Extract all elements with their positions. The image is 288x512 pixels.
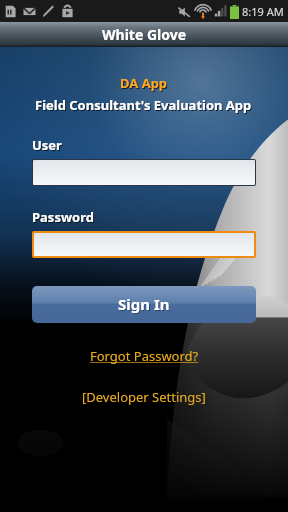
staticText: DA App: [120, 74, 168, 92]
staticText: Sign In: [119, 295, 171, 315]
staticText: [Developer Settings]: [82, 388, 206, 406]
staticText: 8:19 AM: [242, 4, 284, 19]
staticText: Forgot Password?: [90, 347, 199, 365]
button[interactable]: Forgot Password?: [86, 343, 203, 369]
staticText: White Glove: [102, 25, 187, 44]
staticText: DA App: [121, 75, 169, 93]
button[interactable]: [Developer Settings]: [78, 384, 210, 410]
staticText: User: [33, 137, 63, 155]
staticText: Password: [32, 208, 94, 226]
staticText: User: [32, 136, 62, 154]
staticText: Sign In: [118, 294, 170, 314]
button[interactable]: [33, 160, 255, 185]
staticText: Field Consultant's Evaluation App: [35, 96, 252, 114]
button[interactable]: Sign In: [32, 286, 256, 323]
staticText: Password: [33, 209, 95, 227]
button[interactable]: [34, 233, 254, 256]
staticText: Field Consultant's Evaluation App: [36, 97, 253, 115]
